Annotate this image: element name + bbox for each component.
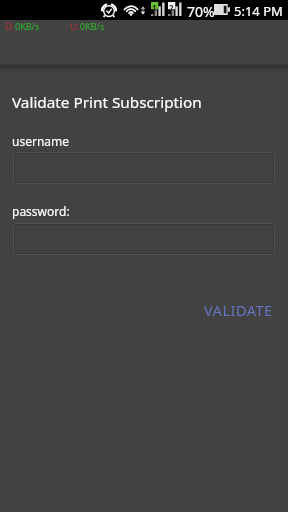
staticText: 70% [187, 2, 215, 21]
other: SIM 2 signal [168, 2, 182, 16]
staticText: 5:14 PM [234, 2, 283, 20]
other: Wi-Fi [122, 3, 140, 17]
staticText: 0KB/s [80, 20, 105, 32]
staticText: username [12, 133, 70, 149]
other: SIM 1 signal [151, 2, 165, 16]
staticText: 1 [152, 2, 157, 9]
staticText: 0KB/s [15, 20, 40, 32]
staticText: U: [70, 20, 79, 32]
other: Alarm [101, 3, 117, 17]
button[interactable]: VALIDATE [196, 294, 281, 326]
button[interactable] [13, 152, 275, 184]
staticText: 2 [169, 2, 174, 9]
button[interactable] [13, 223, 275, 255]
staticText: VALIDATE [204, 300, 273, 320]
staticText: Validate Print Subscription [12, 92, 202, 113]
staticText: password: [12, 203, 70, 219]
staticText: D: [5, 20, 14, 32]
